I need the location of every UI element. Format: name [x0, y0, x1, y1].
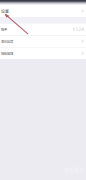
- staticText: >: [81, 7, 84, 15]
- staticText: >: [81, 38, 84, 45]
- button[interactable]: 隐私管理: [0, 47, 86, 59]
- staticText: 版本: [1, 27, 7, 32]
- button[interactable]: 意见反馈: [0, 35, 86, 47]
- staticText: 设置: [1, 8, 9, 14]
- button[interactable]: 版本: [0, 23, 86, 35]
- button[interactable]: 设置: [0, 5, 86, 17]
- staticText: 意见反馈: [1, 39, 13, 44]
- staticText: V 1.2.0: [73, 27, 84, 32]
- staticText: >: [81, 50, 84, 57]
- staticText: 隐私管理: [1, 51, 13, 56]
